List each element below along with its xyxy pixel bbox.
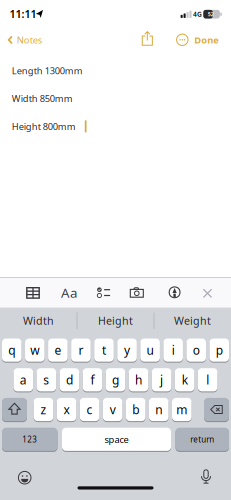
button[interactable]: Delete: [204, 398, 229, 421]
button[interactable]: Dictation: [200, 469, 211, 484]
staticText: b: [132, 401, 139, 417]
button[interactable]: Shift: [2, 398, 27, 421]
staticText: c: [87, 401, 93, 417]
staticText: u: [147, 342, 154, 358]
button[interactable]: Done: [190, 32, 224, 48]
staticText: Weight: [174, 314, 211, 328]
button[interactable]: r: [71, 338, 91, 362]
button[interactable]: z: [34, 398, 53, 421]
button[interactable]: Text formatting: [59, 285, 79, 299]
button[interactable]: space: [62, 428, 171, 451]
button[interactable]: e: [48, 338, 68, 362]
button[interactable]: u: [140, 338, 160, 362]
button[interactable]: Weight: [156, 308, 229, 334]
staticText: f: [90, 372, 94, 388]
staticText: i: [172, 342, 175, 358]
staticText: Notes: [17, 34, 42, 46]
button[interactable]: j: [152, 368, 171, 391]
staticText: z: [40, 401, 46, 417]
button[interactable]: 123: [2, 428, 57, 451]
staticText: l: [206, 372, 209, 388]
button[interactable]: Height: [79, 308, 152, 334]
staticText: Height: [98, 314, 133, 328]
staticText: x: [63, 401, 69, 417]
button[interactable]: d: [60, 368, 79, 391]
staticText: Done: [194, 34, 219, 46]
staticText: p: [216, 342, 223, 358]
button[interactable]: q: [2, 338, 22, 362]
button[interactable]: t: [94, 338, 114, 362]
button[interactable]: More: [176, 34, 188, 46]
staticText: Width: [23, 314, 54, 328]
staticText: d: [66, 372, 73, 388]
staticText: h: [135, 372, 142, 388]
staticText: n: [155, 401, 162, 417]
button[interactable]: b: [126, 398, 145, 421]
staticText: 52: [208, 11, 214, 18]
button[interactable]: m: [172, 398, 192, 421]
staticText: g: [112, 372, 119, 388]
staticText: o: [193, 342, 200, 358]
button[interactable]: p: [209, 338, 229, 362]
button[interactable]: h: [129, 368, 148, 391]
staticText: Width 850mm: [12, 92, 73, 105]
button[interactable]: g: [106, 368, 125, 391]
button[interactable]: Markup: [169, 286, 181, 298]
button[interactable]: k: [175, 368, 194, 391]
button[interactable]: Width: [2, 308, 75, 334]
staticText: space: [104, 433, 128, 445]
button[interactable]: Emoji: [18, 471, 32, 485]
button[interactable]: Insert table: [26, 286, 40, 298]
staticText: k: [182, 372, 188, 388]
staticText: a: [20, 372, 27, 388]
staticText: 11:11: [9, 7, 36, 21]
button[interactable]: f: [83, 368, 102, 391]
button[interactable]: c: [80, 398, 99, 421]
staticText: s: [43, 372, 49, 388]
button[interactable]: Notes: [0, 32, 50, 48]
button[interactable]: o: [186, 338, 206, 362]
staticText: q: [8, 342, 15, 358]
button[interactable]: l: [198, 368, 217, 391]
button[interactable]: a: [13, 368, 33, 391]
button[interactable]: y: [117, 338, 137, 362]
staticText: j: [160, 372, 163, 388]
button[interactable]: Dismiss keyboard: [202, 288, 212, 298]
staticText: r: [78, 342, 83, 358]
staticText: t: [102, 342, 106, 358]
button[interactable]: v: [103, 398, 122, 421]
button[interactable]: s: [36, 368, 56, 391]
staticText: 123: [22, 434, 37, 445]
staticText: y: [124, 342, 130, 358]
button[interactable]: return: [175, 428, 229, 451]
button[interactable]: n: [149, 398, 168, 421]
staticText: return: [190, 434, 214, 445]
staticText: m: [176, 401, 187, 417]
staticText: e: [54, 342, 61, 358]
staticText: v: [110, 401, 116, 417]
button[interactable]: Insert photo: [130, 287, 144, 298]
staticText: w: [30, 342, 39, 358]
staticText: Length 1300mm: [12, 64, 83, 77]
staticText: 4G: [193, 10, 202, 19]
staticText: Height 800mm: [12, 120, 76, 133]
button[interactable]: Share: [141, 31, 154, 46]
button[interactable]: x: [57, 398, 76, 421]
button[interactable]: Checklist: [96, 287, 110, 299]
button[interactable]: w: [25, 338, 45, 362]
button[interactable]: i: [163, 338, 183, 362]
staticText: Aa: [61, 284, 77, 301]
